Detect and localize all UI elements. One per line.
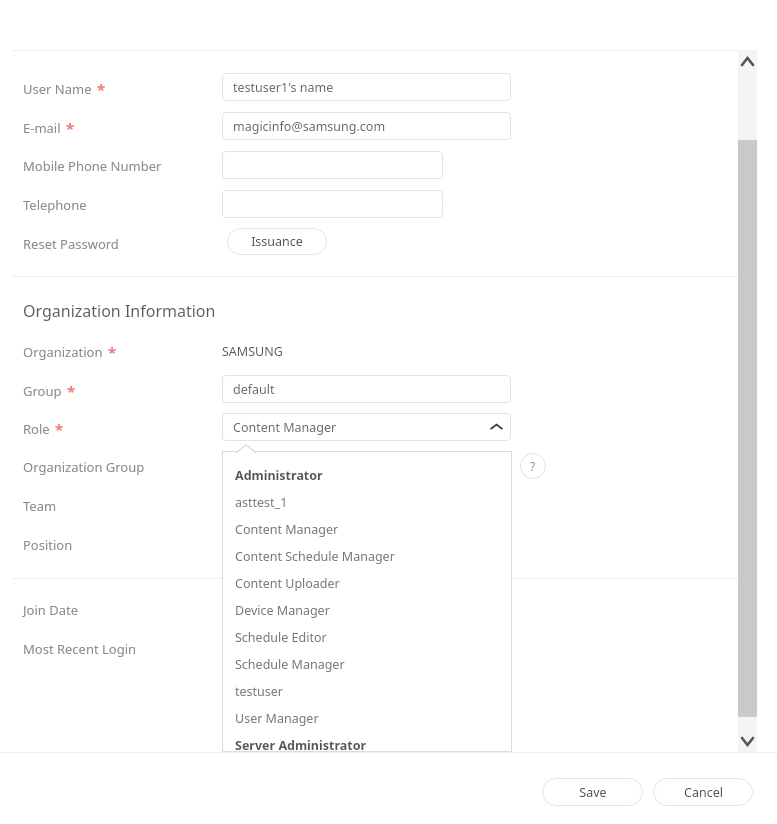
button[interactable]: Help bbox=[520, 453, 546, 479]
staticText: Most Recent Login bbox=[23, 640, 137, 658]
staticText: Join Date bbox=[23, 601, 78, 619]
button[interactable]: Scroll up bbox=[738, 50, 757, 72]
button[interactable]: Scroll down bbox=[738, 730, 757, 752]
button[interactable]: Cancel bbox=[653, 778, 753, 806]
staticText: Role bbox=[23, 420, 50, 438]
staticText: Content Manager bbox=[235, 521, 339, 538]
staticText: asttest_1 bbox=[235, 494, 288, 511]
button[interactable]: Server Administrator bbox=[222, 732, 512, 759]
button[interactable] bbox=[222, 151, 443, 179]
button[interactable]: asttest_1 bbox=[222, 489, 512, 516]
staticText: Organization Group bbox=[23, 458, 145, 476]
staticText: Organization Information bbox=[23, 300, 216, 322]
button[interactable] bbox=[222, 190, 443, 218]
button[interactable]: User Manager bbox=[222, 705, 512, 732]
staticText: User Name bbox=[23, 80, 92, 98]
staticText: testuser bbox=[235, 683, 283, 700]
button[interactable]: Content Uploader bbox=[222, 570, 512, 597]
button[interactable]: magicinfo@samsung.com bbox=[222, 112, 511, 140]
staticText: Server Administrator bbox=[235, 737, 367, 754]
staticText: Mobile Phone Number bbox=[23, 157, 162, 175]
button[interactable]: Schedule Editor bbox=[222, 624, 512, 651]
staticText: Organization bbox=[23, 343, 103, 361]
button[interactable]: Device Manager bbox=[222, 597, 512, 624]
staticText: Schedule Editor bbox=[235, 629, 327, 646]
staticText: ? bbox=[530, 458, 536, 474]
button[interactable]: Issuance bbox=[227, 228, 327, 255]
button[interactable]: Content Manager bbox=[222, 413, 511, 441]
staticText: Cancel bbox=[684, 784, 723, 801]
button[interactable]: Content Schedule Manager bbox=[222, 543, 512, 570]
button[interactable]: Administrator bbox=[222, 462, 512, 489]
staticText: Team bbox=[23, 497, 57, 515]
staticText: magicinfo@samsung.com bbox=[233, 118, 386, 135]
button[interactable]: default bbox=[222, 375, 511, 403]
button[interactable]: testuser bbox=[222, 678, 512, 705]
staticText: Content Manager bbox=[233, 419, 337, 436]
staticText: * bbox=[55, 419, 64, 439]
staticText: * bbox=[108, 342, 117, 362]
staticText: * bbox=[66, 118, 75, 138]
button[interactable]: testuser1's name bbox=[222, 73, 511, 101]
staticText: Group bbox=[23, 382, 62, 400]
staticText: Device Manager bbox=[235, 602, 330, 619]
staticText: Telephone bbox=[23, 196, 87, 214]
staticText: Position bbox=[23, 536, 73, 554]
other: Scrollbar bbox=[738, 50, 757, 752]
staticText: User Manager bbox=[235, 710, 319, 727]
staticText: Save bbox=[579, 784, 607, 801]
staticText: Reset Password bbox=[23, 235, 119, 253]
staticText: Content Uploader bbox=[235, 575, 340, 592]
button[interactable]: Content Manager bbox=[222, 516, 512, 543]
staticText: default bbox=[233, 381, 275, 398]
staticText: testuser1's name bbox=[233, 79, 334, 96]
button[interactable]: Save bbox=[542, 778, 643, 806]
staticText: SAMSUNG bbox=[222, 343, 283, 360]
staticText: * bbox=[67, 381, 76, 401]
button[interactable]: Schedule Manager bbox=[222, 651, 512, 678]
staticText: Schedule Manager bbox=[235, 656, 345, 673]
staticText: E-mail bbox=[23, 119, 61, 137]
staticText: * bbox=[97, 79, 106, 99]
staticText: Administrator bbox=[235, 467, 323, 484]
staticText: Issuance bbox=[251, 233, 303, 250]
staticText: Content Schedule Manager bbox=[235, 548, 395, 565]
